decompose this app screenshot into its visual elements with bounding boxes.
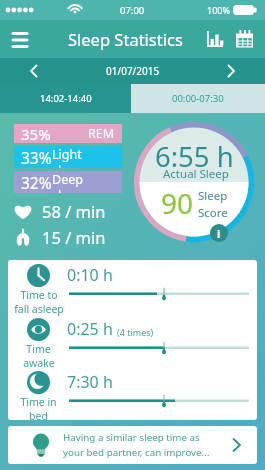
staticText: 14:02-14:40 (40, 92, 92, 105)
staticText: 6:55 h (155, 138, 234, 175)
staticText: 100% (207, 4, 230, 16)
button[interactable]: Menu (6, 25, 34, 53)
staticText: Score (198, 205, 228, 221)
staticText: 90 (161, 184, 194, 222)
staticText: 07:00 (120, 4, 145, 17)
staticText: Actual Sleep (163, 166, 229, 182)
staticText: 32% (21, 172, 52, 193)
button[interactable]: Time (8, 314, 257, 367)
staticText: i (217, 226, 221, 241)
staticText: 0:25 h (67, 318, 113, 340)
button[interactable]: 35% (14, 124, 122, 143)
staticText: 58 / min (42, 200, 106, 222)
button[interactable]: Time in (8, 367, 257, 420)
button[interactable]: 33% (14, 146, 122, 168)
staticText: Having a similar sleep time as (63, 431, 200, 444)
button[interactable]: Previous day (24, 61, 44, 81)
button[interactable]: 32% (14, 171, 122, 193)
staticText: 00:00-07:30 (172, 92, 224, 105)
staticText: bed (29, 409, 48, 420)
staticText: Light sleep (52, 146, 115, 168)
staticText: Sleep (198, 188, 228, 204)
staticText: REM (88, 125, 115, 142)
staticText: fall asleep (14, 302, 64, 316)
button[interactable]: Next day (221, 61, 241, 81)
staticText: 01/07/2015 (106, 64, 160, 78)
staticText: 0:10 h (67, 264, 113, 286)
staticText: Sleep Statistics (68, 28, 183, 50)
button[interactable]: Info (210, 224, 228, 242)
staticText: 15 / min (42, 226, 106, 248)
staticText: your bed partner, can improve... (63, 446, 210, 459)
staticText: (4 times) (117, 326, 154, 338)
staticText: 35% (21, 124, 51, 143)
button[interactable]: Having a similar sleep time as (8, 426, 257, 464)
staticText: 33% (21, 147, 52, 168)
staticText: Time to (20, 288, 58, 302)
staticText: 7:30 h (67, 371, 113, 393)
button[interactable]: Time to (8, 260, 257, 313)
staticText: Time (26, 342, 51, 356)
staticText: Deep sleep (52, 171, 115, 193)
button[interactable]: Calendar (234, 28, 256, 50)
button[interactable]: Charts (205, 28, 227, 50)
button[interactable]: 00:00-07:30 (131, 84, 265, 113)
staticText: Time in (20, 395, 57, 409)
staticText: awake (23, 356, 55, 370)
button[interactable]: 14:02-14:40 (0, 84, 131, 113)
